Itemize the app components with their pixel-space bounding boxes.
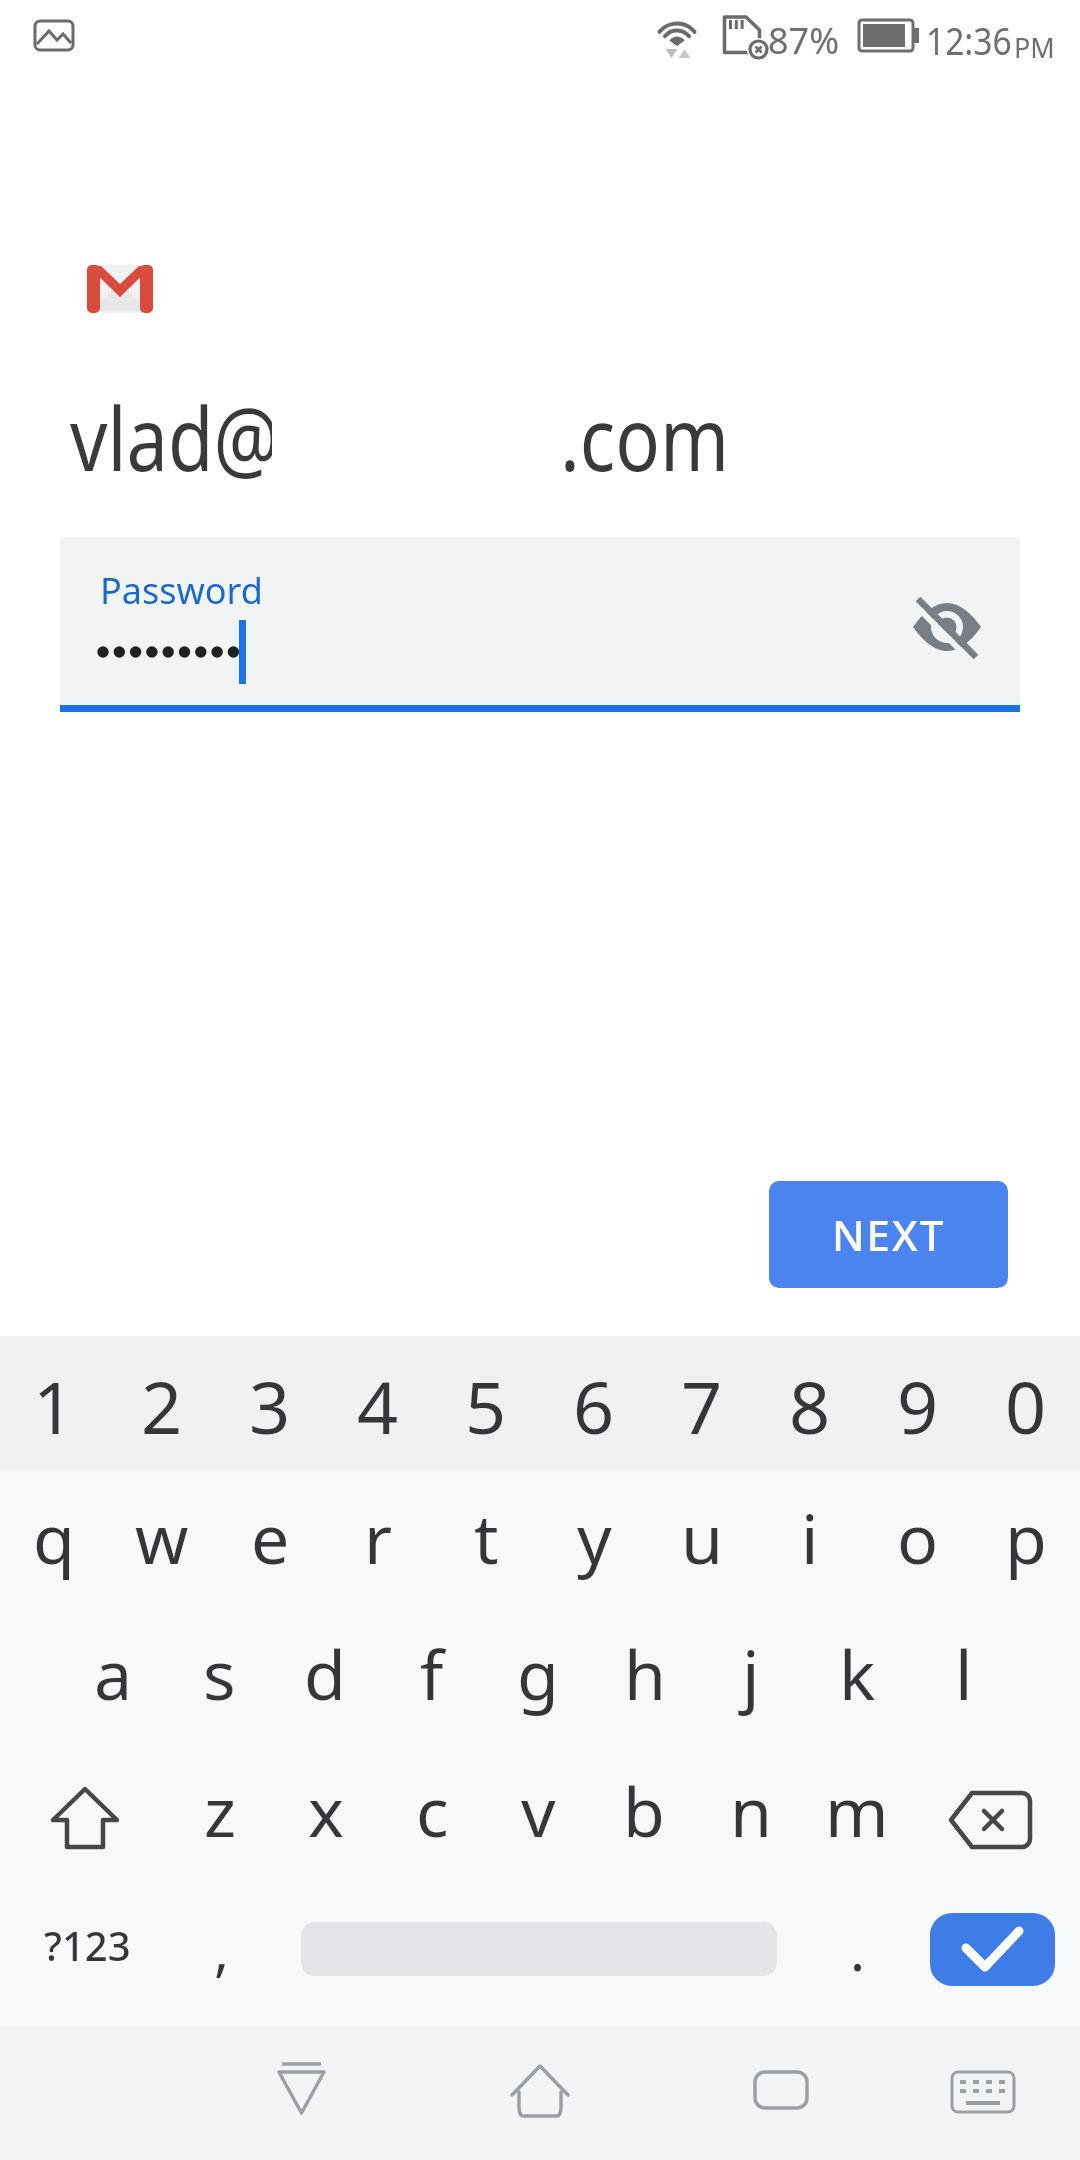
button[interactable] xyxy=(930,1913,1055,1986)
staticText: 8 xyxy=(789,1357,831,1455)
staticText: w xyxy=(135,1491,189,1584)
staticText: y xyxy=(577,1491,612,1584)
button[interactable] xyxy=(245,2030,357,2154)
staticText: g xyxy=(517,1627,559,1720)
button[interactable]: , xyxy=(172,1889,272,2009)
button[interactable]: 0 xyxy=(974,1342,1078,1470)
staticText: b xyxy=(623,1764,665,1857)
button[interactable]: x xyxy=(275,1746,377,1874)
staticText: 12:36 xyxy=(926,13,1012,66)
button[interactable]: c xyxy=(381,1746,483,1874)
button[interactable]: o xyxy=(866,1473,970,1601)
button[interactable]: a xyxy=(62,1609,164,1737)
staticText: 0 xyxy=(1005,1357,1047,1455)
button[interactable]: b xyxy=(593,1746,695,1874)
button[interactable]: n xyxy=(700,1746,802,1874)
button[interactable]: m xyxy=(806,1746,908,1874)
staticText: PM xyxy=(1014,29,1055,66)
button[interactable]: d xyxy=(274,1609,376,1737)
button[interactable]: NEXT xyxy=(769,1181,1008,1288)
staticText: , xyxy=(214,1911,230,1987)
staticText: j xyxy=(742,1627,760,1720)
staticText: c xyxy=(416,1764,449,1857)
staticText: p xyxy=(1005,1491,1047,1584)
button[interactable] xyxy=(927,2030,1039,2154)
staticText: 1 xyxy=(33,1357,75,1455)
button[interactable]: w xyxy=(110,1473,214,1601)
button[interactable]: t xyxy=(434,1473,538,1601)
staticText: d xyxy=(304,1627,346,1720)
staticText: NEXT xyxy=(832,1206,946,1263)
button[interactable] xyxy=(40,1756,160,1880)
button[interactable]: r xyxy=(326,1473,430,1601)
button[interactable]: ?123 xyxy=(22,1885,152,2005)
staticText: l xyxy=(955,1627,973,1720)
button[interactable]: k xyxy=(806,1609,908,1737)
button[interactable]: 3 xyxy=(218,1342,322,1470)
button[interactable] xyxy=(725,2030,837,2154)
button[interactable]: 8 xyxy=(758,1342,862,1470)
staticText: 9 xyxy=(897,1357,939,1455)
staticText: s xyxy=(203,1627,236,1720)
staticText: a xyxy=(94,1627,133,1720)
button[interactable]: j xyxy=(700,1609,802,1737)
staticText: ?123 xyxy=(44,1918,131,1972)
button[interactable]: . xyxy=(808,1889,908,2009)
button[interactable]: 6 xyxy=(542,1342,646,1470)
staticText: x xyxy=(308,1764,344,1857)
staticText: n xyxy=(730,1764,773,1857)
button[interactable]: z xyxy=(169,1746,271,1874)
staticText: z xyxy=(204,1764,236,1857)
staticText: . xyxy=(850,1911,866,1987)
staticText: f xyxy=(420,1627,444,1720)
staticText: r xyxy=(364,1491,393,1584)
staticText: vlad@s xyxy=(70,377,316,497)
button[interactable]: 4 xyxy=(326,1342,430,1470)
button[interactable]: y xyxy=(542,1473,646,1601)
staticText: 5 xyxy=(465,1357,507,1455)
button[interactable] xyxy=(930,1756,1050,1880)
staticText: h xyxy=(624,1627,667,1720)
staticText: v xyxy=(521,1764,556,1857)
button[interactable]: 1 xyxy=(2,1342,106,1470)
staticText: 4 xyxy=(357,1357,399,1455)
button[interactable] xyxy=(60,537,1020,705)
staticText: q xyxy=(33,1491,75,1584)
button[interactable] xyxy=(484,2030,596,2154)
button[interactable]: p xyxy=(974,1473,1078,1601)
button[interactable]: l xyxy=(913,1609,1015,1737)
staticText: k xyxy=(839,1627,876,1720)
staticText: 6 xyxy=(573,1357,615,1455)
button[interactable]: g xyxy=(487,1609,589,1737)
staticText: o xyxy=(897,1491,939,1584)
button[interactable]: q xyxy=(2,1473,106,1601)
button[interactable]: h xyxy=(594,1609,696,1737)
staticText: t xyxy=(474,1491,499,1584)
staticText: Password xyxy=(100,566,263,615)
staticText: 7 xyxy=(681,1357,723,1455)
staticText: e xyxy=(251,1491,290,1584)
staticText: m xyxy=(825,1764,889,1857)
button[interactable]: 9 xyxy=(866,1342,970,1470)
button[interactable]: 7 xyxy=(650,1342,754,1470)
button[interactable]: u xyxy=(650,1473,754,1601)
staticText: 2 xyxy=(141,1357,183,1455)
button[interactable]: v xyxy=(487,1746,589,1874)
button[interactable]: i xyxy=(758,1473,862,1601)
staticText: i xyxy=(801,1491,819,1584)
button[interactable]: s xyxy=(168,1609,270,1737)
staticText: 87% xyxy=(768,16,840,65)
button[interactable]: 2 xyxy=(110,1342,214,1470)
staticText: .com xyxy=(560,377,730,497)
button[interactable]: f xyxy=(381,1609,483,1737)
staticText: 3 xyxy=(249,1357,291,1455)
button[interactable]: e xyxy=(218,1473,322,1601)
button[interactable]: 5 xyxy=(434,1342,538,1470)
staticText: u xyxy=(681,1491,724,1584)
